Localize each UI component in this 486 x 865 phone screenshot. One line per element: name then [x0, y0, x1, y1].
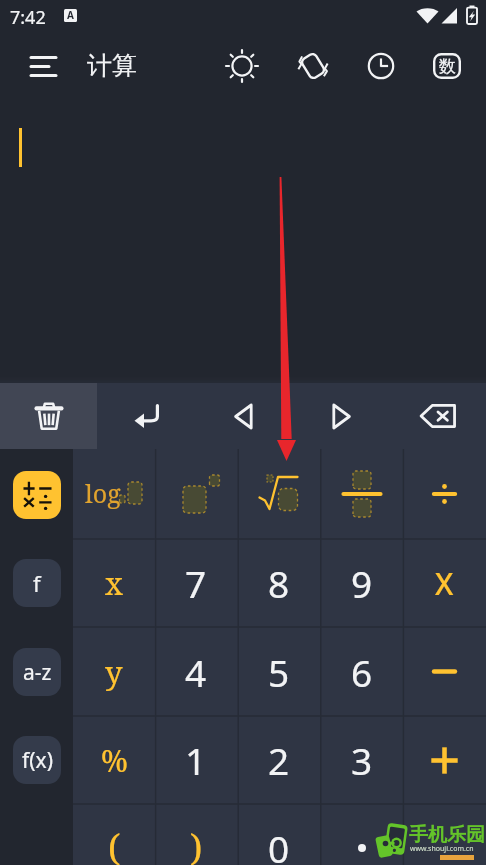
button[interactable]: 4	[155, 627, 237, 716]
button[interactable]: Operators	[13, 471, 61, 519]
button[interactable]: Brightness	[215, 33, 269, 99]
button[interactable]: f	[13, 559, 61, 607]
staticText: 8	[268, 558, 290, 608]
button[interactable]: x	[73, 539, 155, 627]
staticText: 计算	[87, 50, 137, 81]
button[interactable]: Backspace	[389, 383, 486, 449]
staticText: 手机乐园	[409, 823, 485, 847]
button[interactable]	[403, 627, 486, 716]
staticText: x	[105, 562, 123, 604]
staticText: X	[435, 563, 454, 604]
staticText: (	[108, 823, 121, 865]
button[interactable]	[320, 449, 403, 539]
button[interactable]: y	[73, 627, 155, 716]
button[interactable]: log	[73, 449, 155, 539]
staticText: f(x)	[22, 746, 53, 775]
button[interactable]: Move left	[195, 383, 292, 449]
staticText: 7	[185, 558, 207, 608]
button[interactable]: 7	[155, 539, 237, 627]
button[interactable]: 9	[320, 539, 403, 627]
button[interactable]	[403, 716, 486, 804]
button[interactable]: 0	[237, 804, 320, 865]
button[interactable]: 5	[237, 627, 320, 716]
staticText: )	[190, 823, 203, 865]
staticText: www.shouji.com.cn	[410, 844, 474, 854]
button[interactable]: Clear all	[0, 383, 97, 449]
staticText: 4	[185, 647, 207, 697]
staticText: a-z	[23, 658, 52, 687]
button[interactable]: Enter	[97, 383, 195, 449]
staticText: 5	[268, 647, 290, 697]
button[interactable]: (	[73, 804, 155, 865]
staticText: 9	[351, 558, 373, 608]
button[interactable]: 3	[320, 716, 403, 804]
button[interactable]: X	[403, 539, 486, 627]
button[interactable]: Move right	[292, 383, 389, 449]
button[interactable]: f(x)	[13, 736, 61, 784]
button[interactable]: 1	[155, 716, 237, 804]
button[interactable]: 8	[237, 539, 320, 627]
staticText: 0	[268, 823, 290, 865]
button[interactable]: Rotate screen	[286, 33, 340, 99]
staticText: 7:42	[10, 5, 46, 30]
button[interactable]: )	[155, 804, 237, 865]
staticText: 6	[351, 647, 373, 697]
button[interactable]: 2	[237, 716, 320, 804]
button[interactable]	[403, 804, 486, 865]
staticText: 3	[351, 735, 373, 785]
button[interactable]	[155, 449, 237, 539]
button[interactable]	[403, 449, 486, 539]
staticText: f	[33, 568, 41, 598]
staticText: %	[101, 740, 128, 781]
button[interactable]: a-z	[13, 648, 61, 696]
button[interactable]	[320, 804, 403, 865]
staticText: A	[67, 9, 74, 21]
button[interactable]	[237, 449, 320, 539]
button[interactable]: 6	[320, 627, 403, 716]
button[interactable]: Menu	[13, 33, 73, 99]
staticText: y	[105, 651, 123, 693]
staticText: 数	[439, 56, 456, 77]
staticText: 1	[185, 735, 207, 785]
staticText: log	[85, 476, 121, 510]
button[interactable]: Numeric mode	[420, 33, 474, 99]
button[interactable]: %	[73, 716, 155, 804]
button[interactable]: History	[354, 33, 408, 99]
staticText: 2	[268, 735, 290, 785]
